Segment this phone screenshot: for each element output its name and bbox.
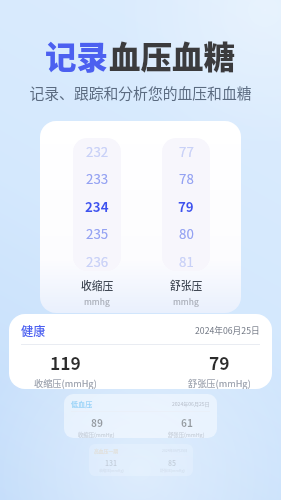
staticText: 记录 xyxy=(45,32,109,78)
staticText: 119 xyxy=(50,350,81,375)
staticText: 235 xyxy=(86,224,109,243)
staticText: 血压血糖 xyxy=(109,32,236,78)
staticText: 舒张压(mmHg) xyxy=(188,376,251,389)
staticText: 232 xyxy=(86,142,109,161)
staticText: 2024年06月25日 xyxy=(172,400,210,407)
staticText: 舒张压 xyxy=(170,277,203,293)
staticText: 舒张压(mmHg) xyxy=(160,468,185,473)
staticText: 健康 xyxy=(21,322,46,340)
staticText: 收缩压(mmHg) xyxy=(78,431,115,438)
staticText: 85 xyxy=(168,458,177,468)
staticText: 234 xyxy=(85,197,109,216)
button[interactable]: 低血压 xyxy=(64,394,217,438)
staticText: 79 xyxy=(209,350,230,375)
staticText: 89 xyxy=(91,415,103,430)
staticText: 77 xyxy=(179,142,194,161)
staticText: 收缩压(mmHg) xyxy=(99,468,124,473)
staticText: mmhg xyxy=(173,295,199,307)
staticText: 高血压一期 xyxy=(94,447,119,454)
staticText: 收缩压(mmHg) xyxy=(34,376,97,389)
staticText: 记录、跟踪和分析您的血压和血糖 xyxy=(0,82,281,103)
staticText: 131 xyxy=(105,458,118,468)
staticText: 81 xyxy=(179,252,194,271)
button[interactable]: 健康 xyxy=(9,314,272,389)
staticText: 低血压 xyxy=(71,399,93,409)
staticText: 79 xyxy=(178,197,194,216)
staticText: 233 xyxy=(86,169,109,188)
button[interactable]: 高血压一期 xyxy=(89,444,193,476)
staticText: 61 xyxy=(181,415,193,430)
staticText: 78 xyxy=(179,169,194,188)
staticText: 236 xyxy=(86,252,109,271)
staticText: 舒张压(mmHg) xyxy=(168,431,205,438)
staticText: mmhg xyxy=(84,295,110,307)
staticText: 80 xyxy=(179,224,194,243)
staticText: 收缩压 xyxy=(81,277,114,293)
staticText: 2024年06月25日 xyxy=(162,448,188,453)
staticText: 2024年06月25日 xyxy=(195,324,260,337)
